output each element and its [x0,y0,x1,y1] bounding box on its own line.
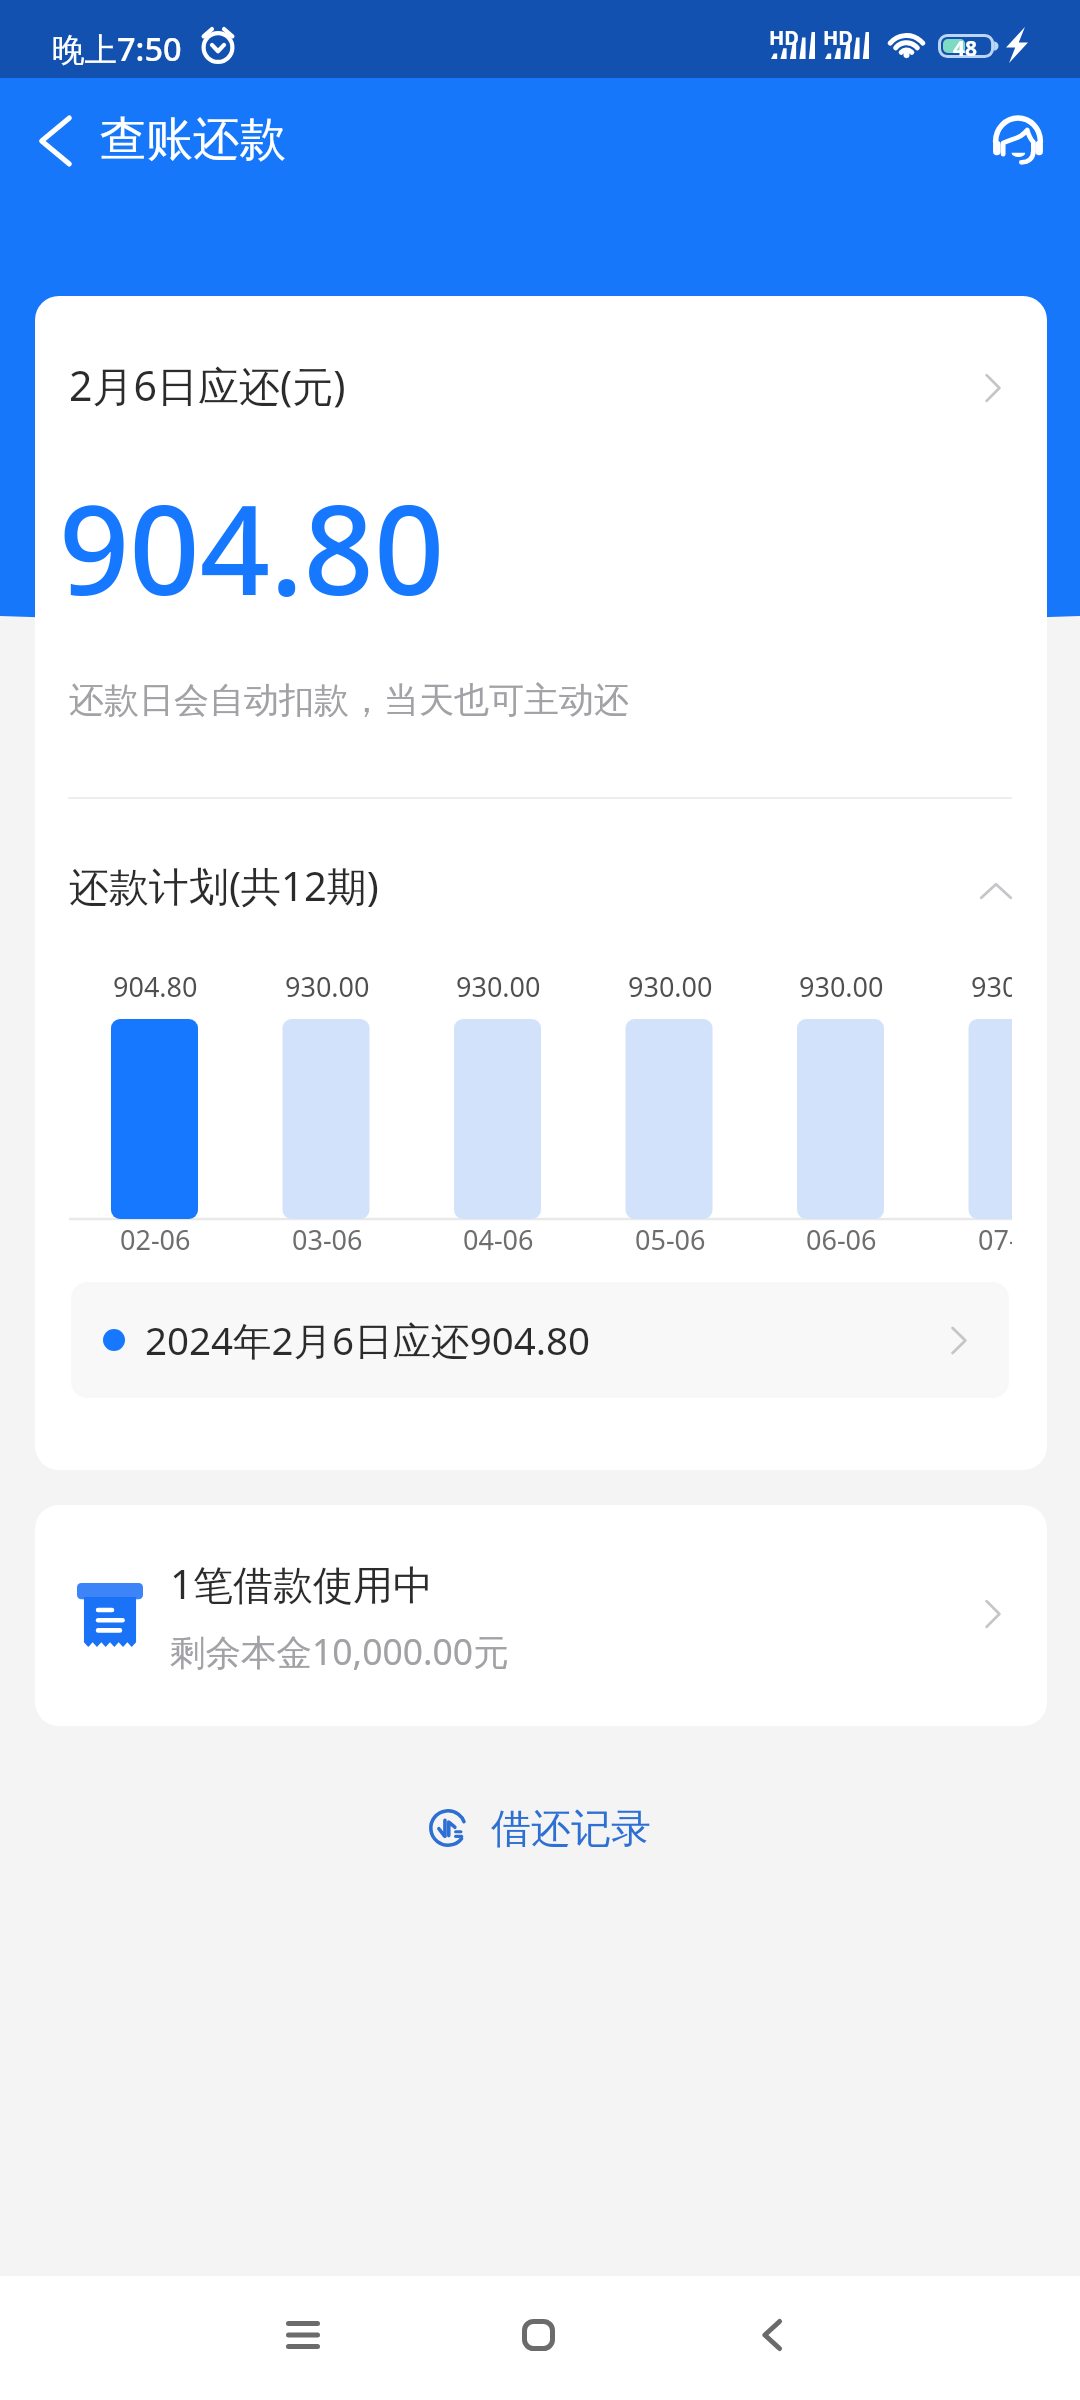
staticText: HD [823,24,853,51]
staticText: 借还记录 [491,1803,651,1853]
staticText: 还款计划(共12期) [69,858,379,913]
staticText: 930.00 [285,968,370,1005]
staticText: 03-06 [292,1221,363,1258]
staticText: 48 [953,34,978,58]
button[interactable]: Customer service [962,82,1074,204]
button[interactable]: Home [478,2276,598,2394]
button[interactable]: 1笔借款使用中 [35,1505,1047,1726]
button[interactable]: Recent apps [243,2276,363,2394]
staticText: 04-06 [463,1221,534,1258]
staticText: 05-06 [635,1221,706,1258]
button[interactable]: 借还记录 [409,1789,671,1867]
staticText: 还款日会自动扣款，当天也可主动还 [69,678,629,722]
staticText: 查账还款 [100,110,286,169]
staticText: 904.80 [59,464,445,632]
staticText: 2月6日应还(元) [69,357,346,413]
button[interactable]: Back [5,80,105,202]
staticText: 930.00 [456,968,541,1005]
button[interactable]: 2月6日应还(元) [35,326,1047,446]
button[interactable]: 2024年2月6日应还904.80 [71,1282,1009,1398]
staticText: HD [769,24,799,51]
staticText: 930.00 [628,968,713,1005]
staticText: 930.00 [971,968,1012,1005]
staticText: 剩余本金10,000.00元 [170,1627,509,1675]
staticText: 晚上7:50 [52,26,182,70]
button[interactable]: Back [712,2276,832,2394]
button[interactable]: 还款计划(共12期) [35,836,1047,941]
staticText: 904.80 [113,968,198,1005]
staticText: 1笔借款使用中 [170,1556,433,1611]
staticText: 06-06 [806,1221,877,1258]
staticText: 2024年2月6日应还904.80 [145,1314,591,1367]
staticText: 07-06 [978,1221,1012,1258]
staticText: 930.00 [799,968,884,1005]
staticText: 02-06 [120,1221,191,1258]
